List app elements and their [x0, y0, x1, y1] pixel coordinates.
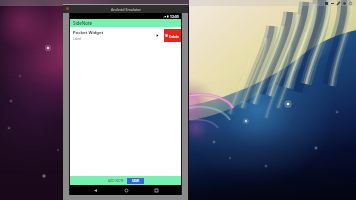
- button[interactable]: Home: [121, 185, 131, 195]
- staticText: Label: [73, 37, 82, 41]
- button[interactable]: Delete: [164, 29, 181, 42]
- button[interactable]: Network: [329, 0, 335, 6]
- staticText: 12:00: [170, 14, 179, 19]
- button[interactable]: Close window: [66, 7, 69, 10]
- staticText: SAVE: [132, 179, 140, 183]
- staticText: Pocket Widget: [73, 30, 104, 36]
- staticText: ADD NOTE: [108, 179, 124, 183]
- button[interactable]: Bluetooth: [335, 0, 341, 6]
- button[interactable]: Pocket Widget: [70, 27, 181, 43]
- staticText: Android Emulator: [111, 7, 141, 12]
- staticText: Delete: [169, 34, 180, 38]
- button[interactable]: Back: [90, 185, 100, 195]
- button[interactable]: Volume: [341, 0, 347, 6]
- staticText: SideNote: [73, 20, 93, 26]
- button[interactable]: Keyboard layout: [323, 0, 329, 6]
- button[interactable]: ADD NOTE: [108, 179, 124, 183]
- button[interactable]: Power: [347, 0, 353, 6]
- button[interactable]: SAVE: [127, 178, 144, 184]
- button[interactable]: Recents: [151, 185, 161, 195]
